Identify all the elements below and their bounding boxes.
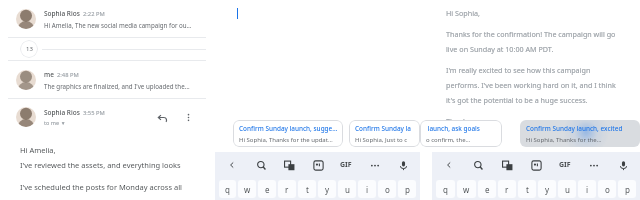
button[interactable]: e	[258, 180, 276, 198]
button[interactable]: Voice input	[614, 156, 632, 174]
staticText: i	[366, 184, 369, 195]
staticText: o	[385, 184, 390, 195]
staticText: Confirm Sunday launch, excited	[526, 124, 623, 133]
button[interactable]: Back	[223, 156, 241, 174]
button[interactable]: e	[478, 180, 496, 198]
button[interactable]: r	[278, 180, 296, 198]
staticText: it's got the potential to be a huge succ…	[446, 95, 588, 105]
staticText: y	[325, 184, 330, 195]
staticText: Hi Sophia, Thanks for the updat…	[239, 136, 333, 144]
button[interactable]: r	[498, 180, 516, 198]
button[interactable]: Search	[252, 156, 270, 174]
staticText: performs. I've been working hard on it, …	[446, 80, 616, 90]
staticText: 2:22 PM	[83, 10, 105, 18]
staticText: u	[565, 184, 570, 195]
staticText: Sophia Rios	[44, 108, 80, 117]
staticText: me	[44, 70, 54, 79]
staticText: GIF	[559, 160, 571, 170]
button[interactable]: y	[318, 180, 336, 198]
button[interactable]: launch, ask goals	[420, 120, 502, 147]
staticText: Hi Sophia, Thanks for the…	[526, 136, 602, 144]
button[interactable]: i	[578, 180, 596, 198]
button[interactable]: More options	[178, 107, 198, 127]
staticText: p	[625, 184, 630, 195]
staticText: e	[265, 184, 270, 195]
staticText: y	[545, 184, 550, 195]
button[interactable]: GIF	[556, 156, 574, 174]
staticText: 2:48 PM	[57, 71, 79, 79]
staticText: live on Sunday at 10:00 AM PDT.	[446, 44, 554, 54]
staticText: Sophia Rios	[44, 9, 80, 18]
staticText: t	[306, 184, 309, 195]
button[interactable]: o	[598, 180, 616, 198]
button[interactable]: 13	[8, 38, 206, 60]
staticText: Confirm Sunday la	[355, 124, 411, 133]
staticText: o	[605, 184, 610, 195]
staticText: I'm really excited to see how this campa…	[446, 65, 591, 75]
button[interactable]: p	[398, 180, 416, 198]
button[interactable]: me	[8, 61, 206, 98]
staticText: Thanks,	[446, 116, 473, 126]
staticText: q	[443, 184, 448, 195]
staticText: 13	[26, 45, 33, 53]
staticText: o confirm, the…	[426, 136, 471, 144]
button[interactable]: q	[219, 180, 236, 198]
staticText: I've reviewed the assets, and everything…	[20, 160, 194, 170]
button[interactable]: Search	[469, 156, 487, 174]
button[interactable]: w	[238, 180, 256, 198]
button[interactable]: Stickers	[527, 156, 545, 174]
staticText: Hi Sophia,	[446, 8, 481, 18]
button[interactable]: Confirm Sunday launch, excited	[520, 120, 640, 147]
staticText: Amelia	[446, 130, 470, 140]
staticText: w	[244, 184, 251, 195]
button[interactable]: o	[378, 180, 396, 198]
staticText: Hi Sophia, Just to c	[355, 136, 408, 144]
staticText: Hi Amelia,	[20, 145, 56, 155]
staticText: to me ▾	[44, 119, 65, 126]
button[interactable]: Sophia Rios	[8, 0, 206, 37]
button[interactable]: Translate	[498, 156, 516, 174]
staticText: I've scheduled the posts for Monday acro…	[20, 182, 183, 192]
button[interactable]: u	[558, 180, 576, 198]
button[interactable]: Reply	[152, 107, 172, 127]
staticText: 3:55 PM	[83, 109, 105, 117]
staticText: Confirm Sunday launch, sugge…	[239, 124, 338, 133]
button[interactable]: More	[366, 156, 384, 174]
button[interactable]: Voice input	[394, 156, 412, 174]
staticText: The graphics are finalized, and I've upl…	[44, 82, 190, 90]
button[interactable]: Back	[440, 156, 458, 174]
button[interactable]: q	[436, 180, 455, 198]
staticText: e	[485, 184, 490, 195]
staticText: GIF	[340, 160, 352, 170]
staticText: Thanks for the confirmation! The campaig…	[446, 29, 616, 39]
button[interactable]: p	[618, 180, 636, 198]
staticText: launch, ask goals	[426, 124, 480, 133]
staticText: r	[285, 184, 289, 195]
button[interactable]: Translate	[280, 156, 298, 174]
staticText: w	[463, 184, 470, 195]
button[interactable]: w	[457, 180, 476, 198]
button[interactable]: Stickers	[309, 156, 327, 174]
button[interactable]: t	[298, 180, 316, 198]
staticText: t	[526, 184, 529, 195]
staticText: q	[225, 184, 230, 195]
button[interactable]: More	[585, 156, 603, 174]
staticText: r	[505, 184, 509, 195]
button[interactable]: i	[358, 180, 376, 198]
button[interactable]: u	[338, 180, 356, 198]
button[interactable]: GIF	[337, 156, 355, 174]
button[interactable]: Confirm Sunday launch, sugge…	[233, 120, 343, 147]
button[interactable]: Confirm Sunday la	[349, 120, 420, 147]
button[interactable]: t	[518, 180, 536, 198]
staticText: p	[405, 184, 410, 195]
button[interactable]: y	[538, 180, 556, 198]
staticText: i	[586, 184, 589, 195]
staticText: u	[345, 184, 350, 195]
staticText: Hi Amelia, The new social media campaign…	[44, 21, 192, 29]
